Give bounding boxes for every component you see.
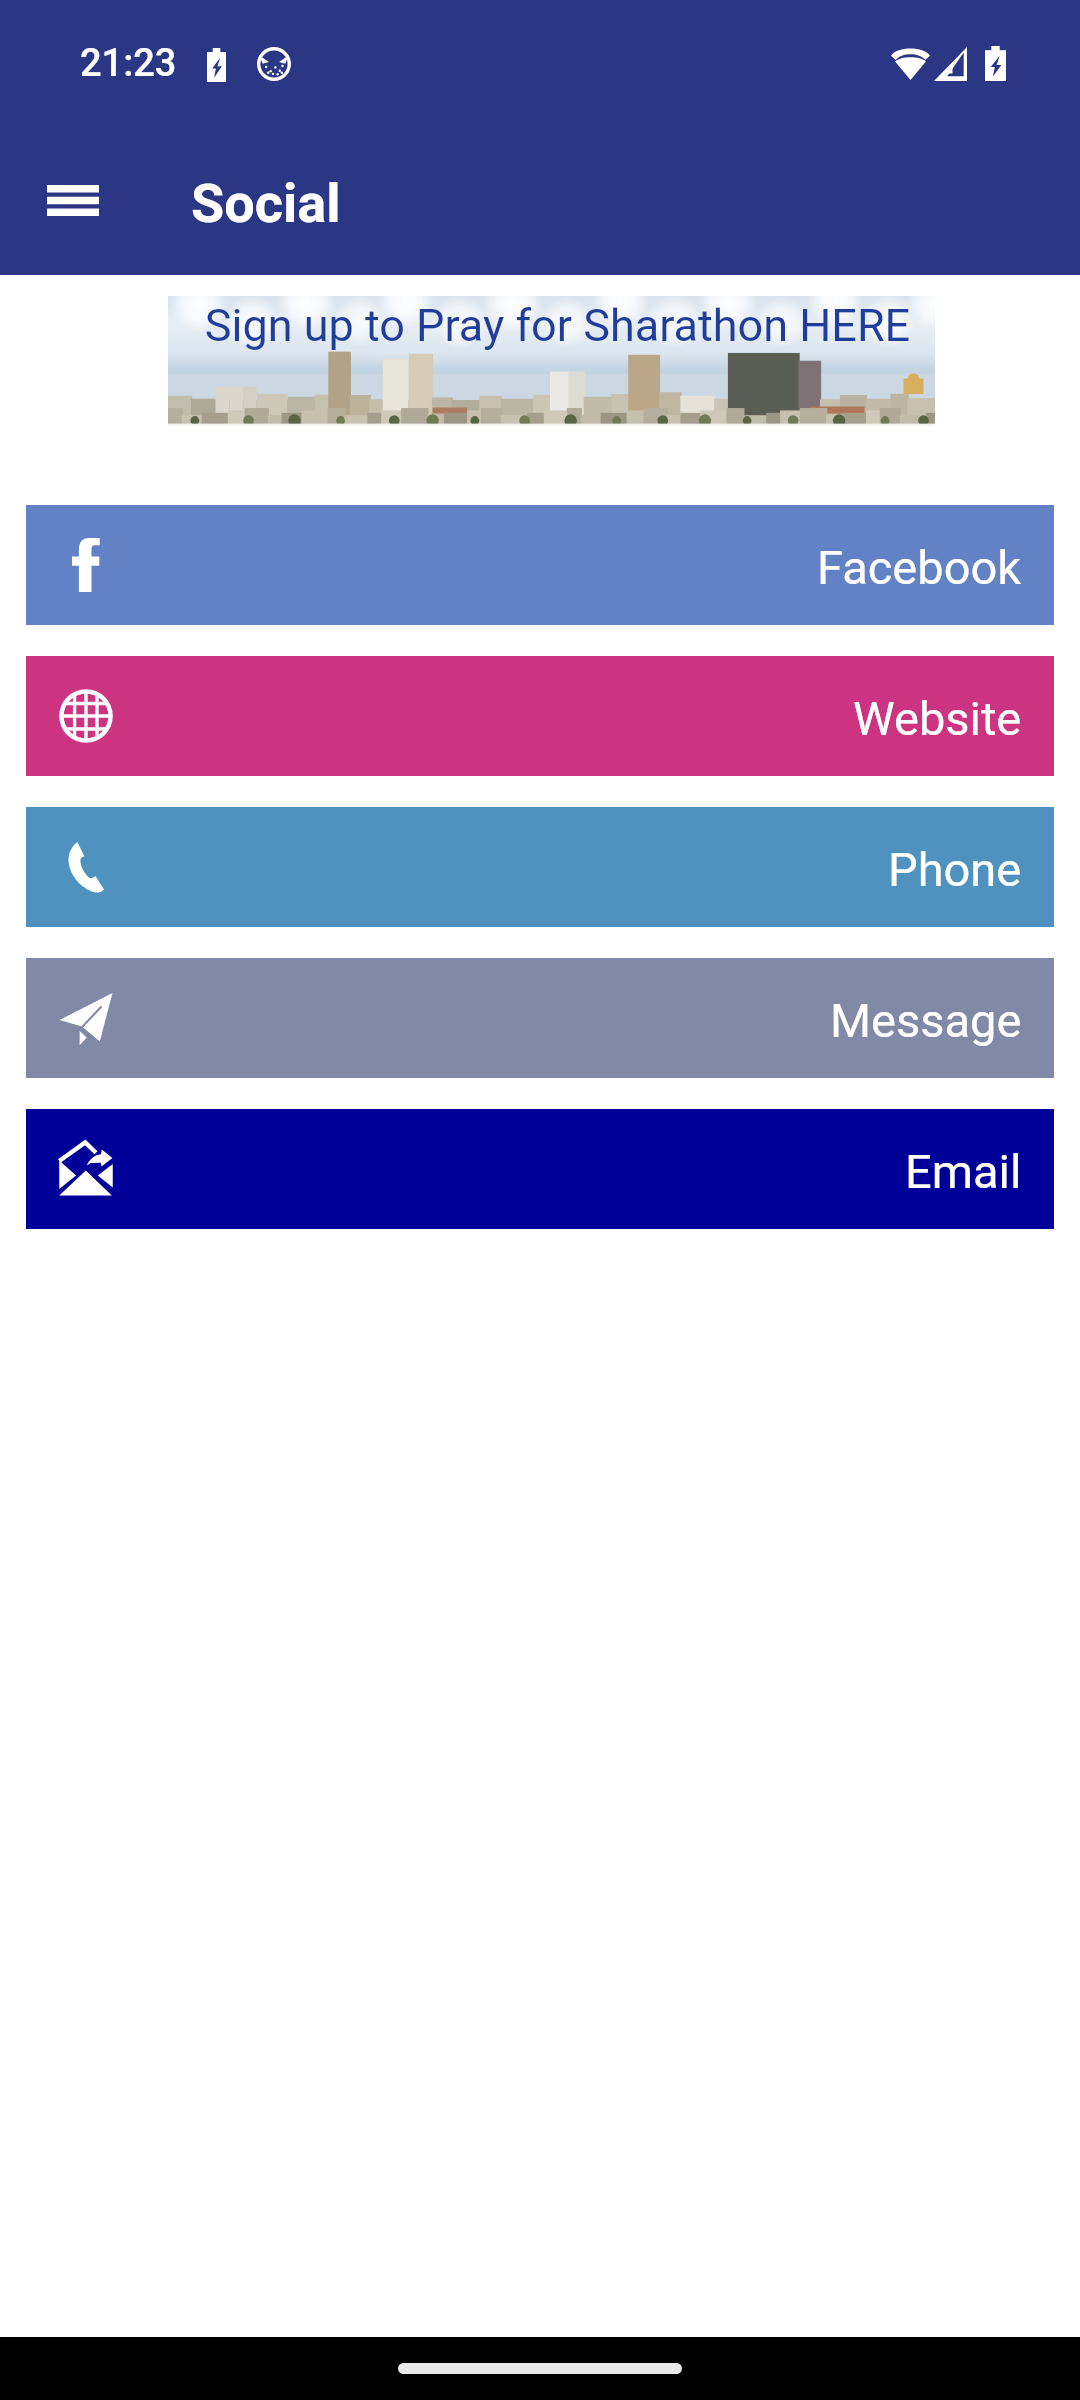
staticText: Phone [888, 842, 1022, 897]
staticText: Email [905, 1144, 1022, 1199]
staticText: Sign up to Pray for Sharathon HERE [180, 299, 935, 352]
staticText: 21:23 [80, 41, 177, 86]
staticText: Message [830, 993, 1022, 1048]
button[interactable]: Email [26, 1109, 1054, 1229]
staticText: Website [853, 691, 1022, 746]
button[interactable]: Open navigation drawer [17, 147, 129, 259]
staticText: Social [191, 172, 341, 235]
button[interactable]: Message [26, 958, 1054, 1078]
button[interactable]: Phone [26, 807, 1054, 927]
button[interactable]: Website [26, 656, 1054, 776]
button[interactable]: Facebook [26, 505, 1054, 625]
staticText: Facebook [817, 540, 1022, 595]
button[interactable]: Sign up to Pray for Sharathon HERE [168, 296, 935, 426]
